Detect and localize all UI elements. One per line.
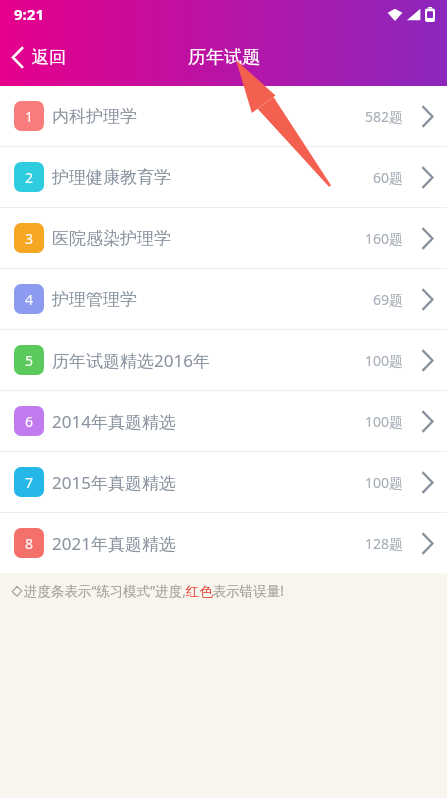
button[interactable]: 1 [0, 86, 447, 146]
button[interactable]: 3 [0, 208, 447, 268]
staticText: 护理管理学 [52, 289, 137, 310]
staticText: 60题 [373, 168, 404, 187]
staticText: 6 [25, 412, 34, 431]
staticText: 100题 [365, 351, 404, 370]
button[interactable]: 6 [0, 391, 447, 451]
staticText: 2 [25, 168, 34, 187]
staticText: 3 [25, 229, 34, 248]
staticText: 582题 [365, 107, 404, 126]
staticText: 69题 [373, 290, 404, 309]
staticText: 7 [25, 473, 34, 492]
button[interactable]: 返回 [0, 39, 82, 76]
staticText: 返回 [32, 47, 66, 68]
staticText: 历年试题精选2016年 [52, 349, 210, 372]
staticText: 医院感染护理学 [52, 228, 171, 249]
staticText: 1 [25, 107, 34, 126]
button[interactable]: 7 [0, 452, 447, 512]
staticText: 128题 [365, 534, 404, 553]
button[interactable]: 4 [0, 269, 447, 329]
staticText: 5 [25, 351, 34, 370]
staticText: 护理健康教育学 [52, 167, 171, 188]
staticText: 4 [25, 290, 34, 309]
staticText: 历年试题 [188, 46, 260, 69]
staticText: 8 [25, 534, 34, 553]
staticText: 100题 [365, 412, 404, 431]
staticText: 2015年真题精选 [52, 471, 176, 494]
button[interactable]: 2 [0, 147, 447, 207]
staticText: 160题 [365, 229, 404, 248]
staticText: 100题 [365, 473, 404, 492]
staticText: 9:21 [14, 4, 44, 24]
staticText: 2014年真题精选 [52, 410, 176, 433]
staticText: 进度条表示“练习模式”进度,红色表示错误量! [24, 582, 284, 600]
button[interactable]: 5 [0, 330, 447, 390]
button[interactable]: 8 [0, 513, 447, 573]
staticText: 2021年真题精选 [52, 532, 176, 555]
staticText: 内科护理学 [52, 106, 137, 127]
